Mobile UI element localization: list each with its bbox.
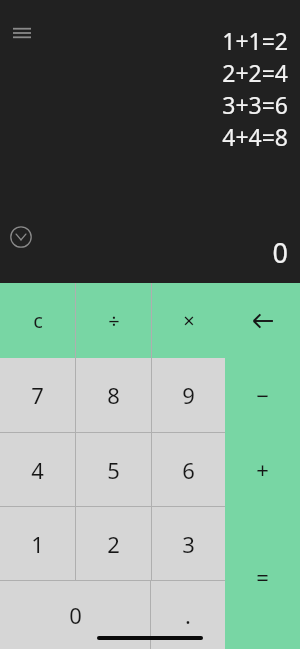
staticText: 2+2=4 (222, 57, 288, 88)
staticText: 3 (182, 529, 195, 559)
staticText: 3+3=6 (222, 89, 288, 120)
button[interactable]: 1 (0, 507, 75, 580)
staticText: × (183, 307, 195, 334)
button[interactable]: × (152, 283, 225, 358)
button[interactable]: 2 (76, 507, 151, 580)
staticText: 8 (107, 380, 120, 410)
staticText: . (185, 600, 191, 630)
staticText: 1 (31, 529, 44, 559)
button[interactable]: 0 (0, 581, 150, 649)
staticText: 1+1=2 (222, 25, 288, 56)
button[interactable]: 5 (76, 433, 151, 506)
button[interactable]: + (225, 432, 300, 505)
staticText: 9 (182, 380, 195, 410)
staticText: 4+4=8 (222, 121, 288, 152)
staticText: + (256, 454, 269, 484)
button[interactable]: 7 (0, 358, 75, 432)
button[interactable]: 4 (0, 433, 75, 506)
staticText: c (33, 307, 43, 334)
button[interactable]: 6 (152, 433, 225, 506)
button[interactable]: c (0, 283, 75, 358)
staticText: − (256, 380, 269, 410)
button[interactable]: 2+2=4 (222, 56, 288, 88)
staticText: = (256, 562, 269, 592)
button[interactable]: 3 (152, 507, 225, 580)
button[interactable]: ÷ (76, 283, 151, 358)
staticText: 0 (272, 234, 288, 271)
staticText: 4 (31, 455, 44, 485)
staticText: 7 (31, 380, 44, 410)
staticText: ÷ (108, 307, 120, 334)
button[interactable]: Menu (6, 17, 38, 49)
button[interactable]: 1+1=2 (222, 24, 288, 56)
button[interactable]: 4+4=8 (222, 120, 288, 152)
button[interactable]: − (225, 358, 300, 432)
staticText: 0 (69, 600, 82, 630)
button[interactable]: Backspace (225, 283, 300, 358)
button[interactable]: 0 (272, 234, 288, 271)
button[interactable]: Collapse history (8, 224, 34, 250)
button[interactable]: 9 (152, 358, 225, 432)
staticText: 2 (107, 529, 120, 559)
button[interactable]: 3+3=6 (222, 88, 288, 120)
staticText: 5 (107, 455, 120, 485)
button[interactable]: . (151, 581, 225, 649)
button[interactable]: = (225, 505, 300, 649)
button[interactable]: 8 (76, 358, 151, 432)
staticText: 6 (182, 455, 195, 485)
